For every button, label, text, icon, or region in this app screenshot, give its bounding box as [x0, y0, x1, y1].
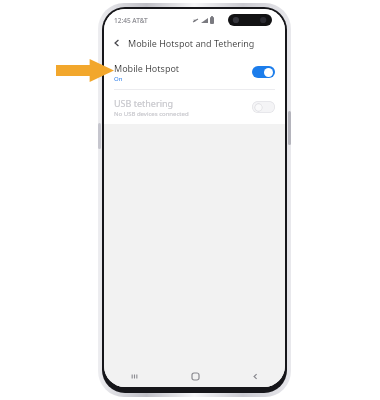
button[interactable]: USB tethering	[104, 90, 285, 124]
button[interactable]: Recent apps	[104, 365, 165, 387]
button[interactable]: Toggle off	[252, 101, 275, 113]
staticText: No USB devices connected	[114, 110, 189, 118]
staticText: 12:45 AT&T	[114, 16, 148, 25]
button[interactable]: Toggle on	[252, 66, 275, 78]
staticText: USB tethering	[114, 97, 174, 109]
staticText: Mobile Hotspot	[114, 62, 180, 74]
staticText: Mobile Hotspot and Tethering	[128, 37, 255, 49]
button[interactable]: Back	[225, 365, 285, 387]
button[interactable]: Mobile Hotspot	[104, 55, 285, 89]
staticText: On	[114, 75, 123, 83]
button[interactable]: Back	[109, 35, 125, 51]
button[interactable]: Home	[165, 365, 225, 387]
